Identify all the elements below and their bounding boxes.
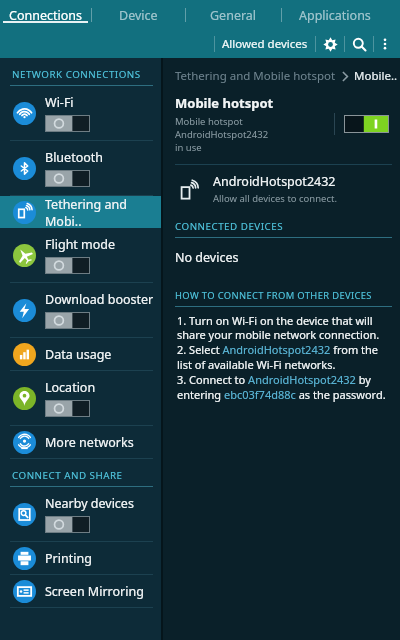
button[interactable]: Applications	[282, 0, 388, 30]
button[interactable]: Wi-Fi	[0, 86, 161, 140]
staticText: NETWORK CONNECTIONS	[12, 68, 141, 81]
button[interactable]: Location	[0, 371, 161, 425]
staticText: More networks	[45, 434, 134, 451]
staticText: Allow all devices to connect.	[213, 192, 337, 205]
staticText: Tethering and Mobile hotspot	[175, 68, 336, 84]
staticText: AndroidHotspot2432	[213, 173, 336, 190]
staticText: in use	[175, 141, 202, 154]
button[interactable]: More networks	[0, 426, 161, 458]
button[interactable]: Mobile hotspot toggle	[344, 115, 389, 133]
button[interactable]: Allowed devices	[215, 31, 315, 57]
button[interactable]: Toggle	[45, 257, 90, 274]
button[interactable]: Toggle	[45, 400, 90, 417]
button[interactable]: Tethering and Mobi..	[0, 196, 161, 228]
staticText: Tethering and Mobi..	[45, 196, 161, 228]
button[interactable]: Bluetooth	[0, 141, 161, 195]
button[interactable]: Printing	[0, 542, 161, 574]
staticText: Nearby devices	[45, 495, 134, 512]
button[interactable]: Nearby devices	[0, 487, 161, 541]
staticText: Applications	[299, 7, 371, 24]
button[interactable]: Search	[345, 30, 373, 58]
button[interactable]: General	[186, 0, 281, 30]
staticText: General	[210, 7, 257, 24]
staticText: Allowed devices	[222, 36, 308, 52]
staticText: Flight mode	[45, 236, 116, 253]
button[interactable]: AndroidHotspot2432	[163, 170, 400, 211]
button[interactable]: Device	[92, 0, 185, 30]
button[interactable]: Flight mode	[0, 228, 161, 282]
button[interactable]: Toggle	[45, 312, 90, 329]
staticText: Mobile hotspot AndroidHotspot2432	[175, 115, 334, 141]
button[interactable]: Toggle	[45, 115, 90, 132]
staticText: CONNECT AND SHARE	[12, 469, 123, 482]
button[interactable]: Download booster	[0, 283, 161, 337]
staticText: Data usage	[45, 346, 112, 363]
staticText: Printing	[45, 550, 92, 567]
button[interactable]: Toggle	[45, 516, 90, 533]
button[interactable]: Settings	[316, 30, 344, 58]
staticText: Bluetooth	[45, 149, 104, 166]
staticText: Screen Mirroring	[45, 583, 144, 600]
staticText: 1. Turn on Wi-Fi on the device that will…	[177, 313, 393, 403]
staticText: Device	[119, 7, 158, 24]
button[interactable]: Connections	[0, 0, 91, 30]
staticText: Mobile..	[354, 68, 398, 84]
button[interactable]: More options	[374, 30, 396, 58]
staticText: Location	[45, 379, 96, 396]
button[interactable]: Screen Mirroring	[0, 575, 161, 607]
staticText: Download booster	[45, 291, 154, 308]
staticText: CONNECTED DEVICES	[175, 220, 284, 233]
staticText: Connections	[9, 7, 82, 24]
staticText: HOW TO CONNECT FROM OTHER DEVICES	[175, 289, 372, 302]
staticText: Mobile hotspot	[175, 94, 274, 112]
button[interactable]: Data usage	[0, 338, 161, 370]
button[interactable]: Toggle	[45, 170, 90, 187]
staticText: No devices	[175, 249, 239, 266]
staticText: Wi-Fi	[45, 94, 74, 111]
